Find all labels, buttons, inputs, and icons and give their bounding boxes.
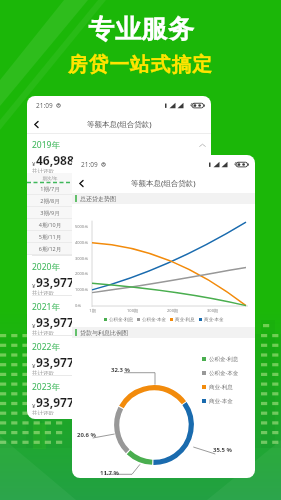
staticText: 利息 xyxy=(165,175,211,181)
staticText: 共计还款 xyxy=(32,370,54,375)
staticText: 等额本息(组合贷款) xyxy=(131,178,196,188)
staticText: 商业-本金 xyxy=(209,397,233,405)
staticText: 共计还款 xyxy=(32,168,54,173)
staticText: 300期 xyxy=(207,308,218,313)
staticText: ¥ xyxy=(32,160,36,168)
staticText: 总还贷走势图 xyxy=(80,195,116,203)
button[interactable]: 4期/10月 xyxy=(27,219,211,230)
staticText: 共计还款 xyxy=(32,410,54,415)
button[interactable]: 2期/8月 xyxy=(27,195,211,206)
button[interactable]: Back xyxy=(27,115,45,133)
staticText: 2000元 xyxy=(75,271,89,276)
staticText: 93,977. xyxy=(36,314,78,330)
staticText: 还款总额 xyxy=(73,175,119,181)
staticText: 公积金-本金 xyxy=(142,316,166,322)
staticText: 2期/8月 xyxy=(27,197,73,205)
staticText: 5000元 xyxy=(75,224,89,229)
staticText: ¥ xyxy=(32,362,36,370)
button[interactable]: 6期/12月 xyxy=(27,243,211,254)
staticText: 20.6 % xyxy=(77,431,96,439)
staticText: 3期/9月 xyxy=(27,209,73,217)
staticText: 公积金-利息 xyxy=(109,316,133,322)
staticText: 共计还款 xyxy=(32,290,54,295)
button[interactable]: 2019年 xyxy=(27,134,211,173)
staticText: 6期/12月 xyxy=(27,245,73,253)
staticText: 公积金-利息 xyxy=(209,355,239,363)
staticText: 2022年 xyxy=(32,341,60,353)
staticText: 11.7 % xyxy=(100,469,119,477)
button[interactable]: 3期/9月 xyxy=(27,207,211,218)
staticText: 46,988. xyxy=(36,152,78,168)
staticText: 93,977. xyxy=(36,394,78,410)
staticText: 房贷一站式搞定 xyxy=(68,52,213,77)
staticText: 200期 xyxy=(167,308,178,313)
staticText: 2023年 xyxy=(32,381,60,393)
staticText: 4G xyxy=(234,161,240,167)
staticText: 2020年 xyxy=(32,261,60,273)
staticText: 93,977. xyxy=(36,354,78,370)
staticText: 3,9 xyxy=(73,185,119,192)
staticText: 3,9 xyxy=(73,233,119,240)
staticText: 4G xyxy=(190,102,196,108)
staticText: 商业-本金 xyxy=(204,316,224,322)
button[interactable]: Back xyxy=(72,174,90,192)
staticText: 21:09 xyxy=(36,101,53,110)
staticText: 贷款与利息比例图 xyxy=(80,329,128,337)
staticText: 22,810 xyxy=(101,152,139,168)
staticText: 1期 xyxy=(89,308,96,313)
staticText: 专业服务 xyxy=(88,13,194,46)
staticText: 本金 xyxy=(119,175,165,181)
staticText: ¥ xyxy=(32,282,36,290)
staticText: 1期/7月 xyxy=(27,185,73,193)
staticText: 100期 xyxy=(127,308,138,313)
staticText: 93,977. xyxy=(36,274,78,290)
staticText: 商业-利息 xyxy=(209,383,233,391)
button[interactable]: 2020年 xyxy=(27,256,211,295)
staticText: 4000元 xyxy=(75,240,89,245)
button[interactable]: 2021年 xyxy=(27,296,211,335)
staticText: 35.5 % xyxy=(213,446,232,454)
staticText: 5期/11月 xyxy=(27,233,73,241)
staticText: 0元 xyxy=(75,303,82,308)
button[interactable]: 2022年 xyxy=(27,336,211,375)
staticText: 32.3 % xyxy=(111,366,130,374)
staticText: ¥ xyxy=(32,402,36,410)
staticText: 2,7 xyxy=(165,185,211,192)
staticText: 共计还款 xyxy=(32,330,54,335)
staticText: 等额本息(组合贷款) xyxy=(87,119,152,129)
staticText: 期次/年 xyxy=(27,175,73,181)
staticText: 2019年 xyxy=(32,139,60,151)
staticText: 公积金-本金 xyxy=(209,369,239,377)
staticText: ¥ xyxy=(32,322,36,330)
staticText: 1000元 xyxy=(75,287,89,292)
staticText: 4期/10月 xyxy=(27,221,73,229)
staticText: 2021年 xyxy=(32,301,60,313)
staticText: 2,7 xyxy=(165,245,211,252)
staticText: 21:09 xyxy=(81,160,98,169)
staticText: 3000元 xyxy=(75,256,89,261)
staticText: 3,9 xyxy=(73,221,119,228)
button[interactable]: 2023年 xyxy=(27,376,211,415)
button[interactable]: 1期/7月 xyxy=(27,183,211,194)
staticText: 1,2 xyxy=(119,185,165,192)
staticText: 1,2 xyxy=(119,245,165,252)
staticText: 商业-利息 xyxy=(175,316,195,322)
staticText: 3,9 xyxy=(73,245,119,252)
button[interactable]: 5期/11月 xyxy=(27,231,211,242)
staticText: 3,9 xyxy=(73,197,119,204)
